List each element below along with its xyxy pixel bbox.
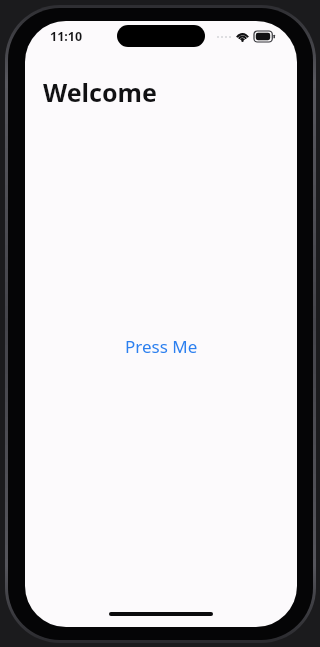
staticText: Welcome xyxy=(43,75,157,109)
staticText: Press Me xyxy=(125,335,198,358)
staticText: 11:10 xyxy=(50,28,83,45)
button[interactable]: Press Me xyxy=(113,328,210,365)
